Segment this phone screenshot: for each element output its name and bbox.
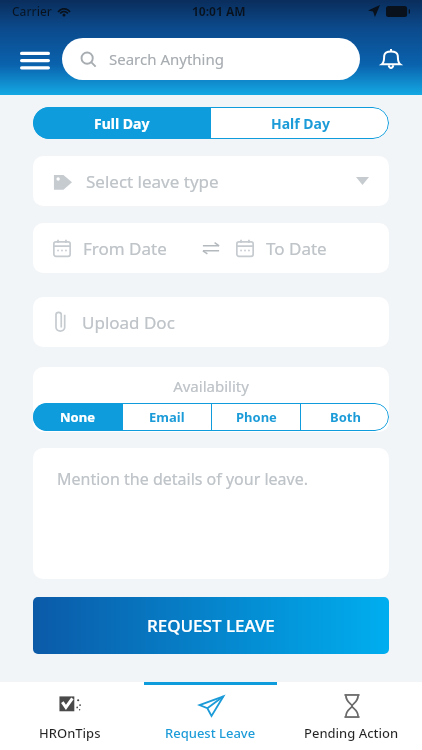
button[interactable]: Swap dates [196,233,226,263]
staticText: Mention the details of your leave. [57,468,309,490]
button[interactable]: Select leave type [33,156,389,206]
staticText: Select leave type [86,170,219,193]
button[interactable]: Upload Doc [33,297,389,347]
button[interactable]: From Date [33,223,196,273]
staticText: Upload Doc [82,311,175,334]
button[interactable]: REQUEST LEAVE [33,597,389,654]
button[interactable]: Notifications [370,38,412,80]
staticText: Pending Action [304,724,399,742]
button[interactable]: Full Day [33,107,211,139]
staticText: Search Anything [109,49,224,69]
staticText: Availability [33,376,389,396]
staticText: Request Leave [165,724,256,742]
staticText: Phone [236,408,277,426]
button[interactable]: Email [123,403,211,431]
button[interactable]: Search Anything [62,38,360,80]
button[interactable]: Mention the details of your leave. [33,448,389,579]
staticText: Carrier [12,3,52,19]
staticText: Full Day [94,114,150,133]
button[interactable]: Request Leave [140,685,281,750]
staticText: None [60,408,95,426]
button[interactable]: Half Day [211,107,389,139]
button[interactable]: Pending Action [281,685,422,750]
button[interactable]: HROnTips [0,685,140,750]
staticText: Half Day [271,114,330,133]
button[interactable]: Both [301,403,389,431]
staticText: HROnTips [39,724,101,742]
button[interactable]: Menu [14,38,56,80]
button[interactable]: Phone [212,403,300,431]
staticText: REQUEST LEAVE [147,614,275,637]
button[interactable]: To Date [226,223,389,273]
button[interactable]: None [33,403,122,431]
staticText: Email [149,408,185,426]
staticText: Both [330,408,361,426]
staticText: To Date [266,237,327,260]
staticText: From Date [83,237,167,260]
staticText: 10:01 AM [192,3,246,19]
